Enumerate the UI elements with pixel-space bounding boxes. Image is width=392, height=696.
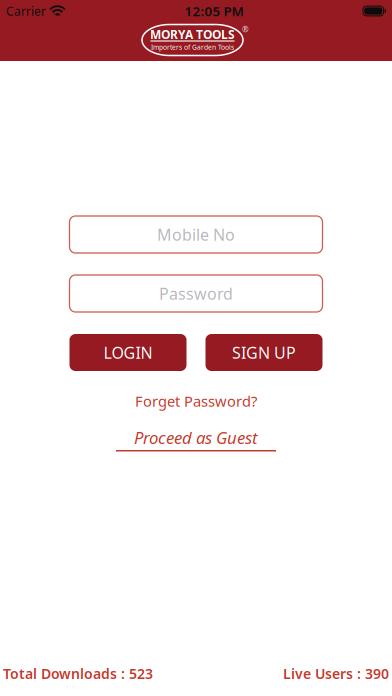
staticText: ® — [242, 24, 249, 35]
staticText: Total Downloads : 523 — [3, 664, 153, 683]
staticText: Live Users : 390 — [283, 664, 389, 683]
button[interactable]: SIGN UP — [205, 334, 322, 371]
staticText: SIGN UP — [232, 342, 296, 363]
staticText: Forget Password? — [135, 391, 257, 411]
button[interactable]: LOGIN — [69, 334, 186, 371]
staticText: Carrier — [6, 3, 46, 19]
staticText: MORYA TOOLS — [150, 26, 235, 42]
staticText: Mobile No — [157, 224, 235, 245]
staticText: Password — [159, 283, 233, 304]
button[interactable]: Proceed as Guest — [112, 430, 280, 451]
staticText: LOGIN — [103, 342, 152, 363]
button[interactable]: Forget Password? — [135, 391, 257, 411]
staticText: Importers of Garden Tools — [151, 43, 234, 52]
staticText: 12:05 PM — [184, 2, 243, 20]
staticText: Proceed as Guest — [134, 426, 258, 449]
